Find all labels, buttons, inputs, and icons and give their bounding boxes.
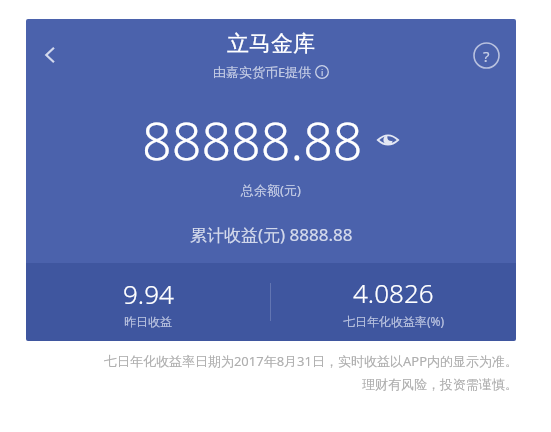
staticText: 9.94 [123, 276, 174, 311]
button[interactable]: 由嘉实货币E提供 [213, 63, 329, 81]
staticText: 由嘉实货币E提供 [213, 63, 312, 81]
staticText: 总余额(元) [241, 181, 301, 199]
button[interactable]: 9.94 [26, 270, 270, 335]
staticText: 88888.88 [142, 104, 363, 175]
button[interactable]: Back [28, 33, 72, 77]
staticText: 昨日收益 [124, 314, 172, 329]
staticText: 累计收益(元) 8888.88 [190, 223, 353, 246]
staticText: i [321, 66, 324, 78]
staticText: 七日年化收益率(%) [343, 313, 445, 329]
staticText: 七日年化收益率日期为2017年8月31日，实时收益以APP内的显示为准。 [30, 352, 518, 370]
staticText: 4.0826 [353, 275, 434, 310]
button[interactable]: Help [464, 33, 508, 77]
staticText: ? [483, 46, 490, 66]
button[interactable]: Toggle balance visibility [375, 127, 401, 153]
button[interactable]: 4.0826 [271, 269, 516, 335]
staticText: 立马金库 [227, 30, 315, 58]
staticText: 理财有风险，投资需谨慎。 [30, 376, 518, 392]
